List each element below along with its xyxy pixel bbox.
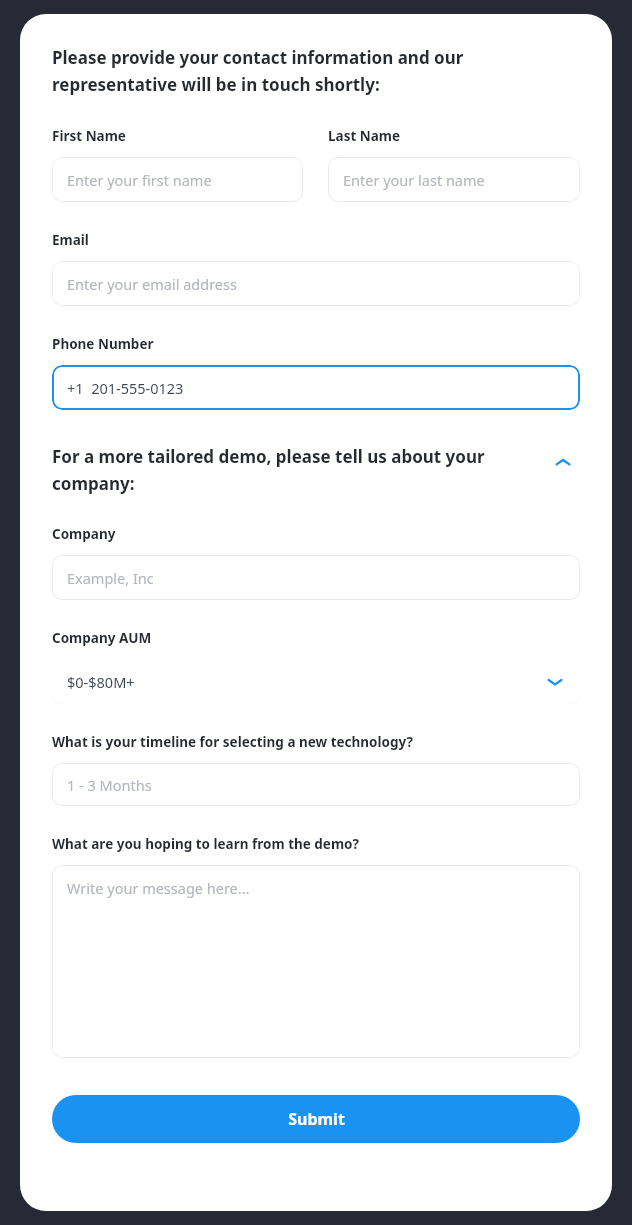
staticText: Enter your last name (343, 170, 485, 190)
button[interactable]: $0-$80M+ (52, 659, 580, 704)
button[interactable]: +1 201-555-0123 (52, 365, 580, 410)
staticText: Last Name (328, 127, 401, 145)
staticText: What are you hoping to learn from the de… (52, 835, 359, 853)
staticText: $0-$80M+ (67, 672, 538, 692)
staticText: Email (52, 231, 89, 249)
staticText: Company AUM (52, 629, 152, 647)
button[interactable]: Open dropdown (538, 665, 572, 699)
staticText: Please provide your contact information … (52, 46, 580, 96)
staticText: Write your message here... (67, 878, 250, 898)
staticText: Company (52, 525, 116, 543)
button[interactable]: Collapse section (546, 445, 580, 479)
button[interactable]: Enter your first name (52, 157, 303, 202)
staticText: Phone Number (52, 335, 154, 353)
staticText: +1 201-555-0123 (67, 378, 184, 398)
button[interactable]: Enter your last name (328, 157, 580, 202)
button[interactable]: Submit (52, 1095, 580, 1143)
button[interactable]: Write your message here... (52, 865, 580, 1058)
button[interactable]: Enter your email address (52, 261, 580, 306)
staticText: Submit (288, 1108, 345, 1130)
button[interactable]: For a more tailored demo, please tell us… (52, 445, 580, 495)
staticText: Enter your email address (67, 274, 237, 294)
staticText: First Name (52, 127, 126, 145)
staticText: For a more tailored demo, please tell us… (52, 445, 534, 495)
staticText: Enter your first name (67, 170, 212, 190)
staticText: 1 - 3 Months (67, 775, 152, 795)
button[interactable]: Example, Inc (52, 555, 580, 600)
button[interactable]: 1 - 3 Months (52, 763, 580, 806)
staticText: Example, Inc (67, 568, 154, 588)
staticText: What is your timeline for selecting a ne… (52, 733, 413, 751)
